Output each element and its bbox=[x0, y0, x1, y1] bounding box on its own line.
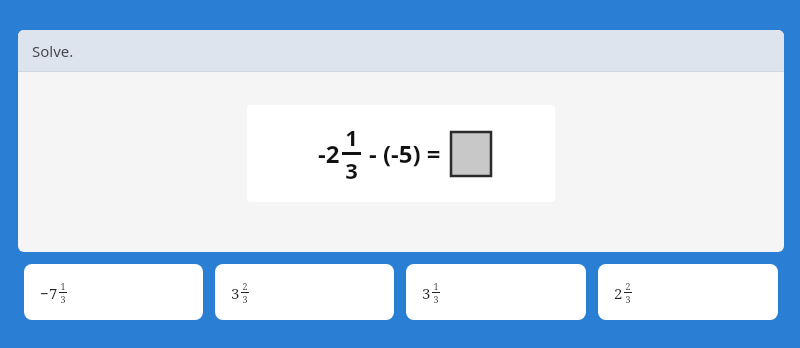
staticText: 7 bbox=[49, 283, 58, 303]
button[interactable]: 3 bbox=[406, 264, 586, 320]
staticText: 3 bbox=[60, 293, 66, 305]
button[interactable]: 2 bbox=[598, 264, 778, 320]
staticText: 3 bbox=[345, 155, 358, 185]
staticText: 1 bbox=[60, 280, 66, 292]
button[interactable]: − bbox=[24, 264, 203, 320]
button[interactable] bbox=[451, 132, 491, 176]
staticText: 1 bbox=[345, 122, 358, 152]
staticText: 3 bbox=[625, 293, 631, 305]
staticText: 2 bbox=[625, 280, 631, 292]
staticText: 3 bbox=[433, 293, 439, 305]
staticText: - (-5) = bbox=[369, 137, 441, 170]
staticText: 2 bbox=[614, 283, 623, 303]
staticText: 1 bbox=[433, 280, 439, 292]
staticText: 3 bbox=[231, 283, 240, 303]
staticText: 3 bbox=[422, 283, 431, 303]
staticText: Solve. bbox=[32, 41, 74, 61]
staticText: 3 bbox=[242, 293, 248, 305]
button[interactable]: 3 bbox=[215, 264, 394, 320]
staticText: − bbox=[40, 283, 49, 303]
staticText: 2 bbox=[242, 280, 248, 292]
staticText: -2 bbox=[318, 137, 340, 170]
